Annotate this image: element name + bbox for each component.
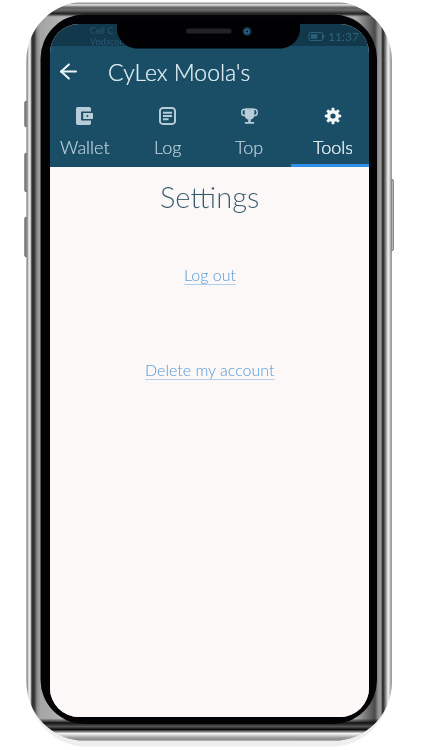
staticText: Log <box>154 136 182 158</box>
staticText: Tools <box>313 136 353 158</box>
button[interactable]: Top <box>208 95 291 167</box>
button[interactable]: Wallet <box>50 95 126 167</box>
staticText: Log out <box>184 265 236 284</box>
button[interactable]: Back <box>50 50 86 92</box>
staticText: Settings <box>160 179 260 214</box>
staticText: Delete my account <box>145 360 275 379</box>
staticText: Cell C <box>90 25 114 36</box>
button[interactable]: Delete my account <box>125 353 295 386</box>
button[interactable]: Tools <box>291 95 369 167</box>
staticText: 11:37 <box>328 29 359 43</box>
button[interactable]: Log out <box>164 258 256 291</box>
staticText: Wallet <box>60 136 110 158</box>
button[interactable]: Log <box>126 95 209 167</box>
staticText: Vodacom <box>90 36 127 47</box>
staticText: Top <box>235 136 264 158</box>
staticText: CyLex Moola's <box>108 58 251 86</box>
